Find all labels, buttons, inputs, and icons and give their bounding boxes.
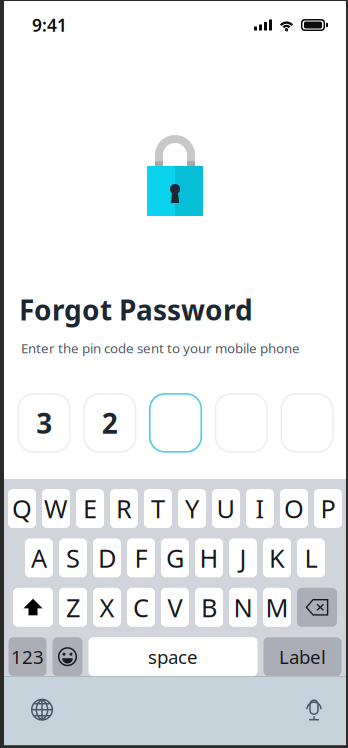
button[interactable]: L [297,538,325,577]
button[interactable]: B [195,588,223,627]
button[interactable]: Q [8,489,36,528]
button[interactable]: Dictate [292,688,336,732]
button[interactable]: P [314,489,342,528]
staticText: 9:41 [32,13,67,36]
staticText: O [284,492,304,525]
staticText: E [83,492,97,525]
staticText: V [167,590,182,624]
button[interactable]: space [88,637,257,676]
button[interactable]: G [161,538,189,577]
staticText: 123 [11,644,44,669]
button[interactable]: Emoji [52,637,82,676]
staticText: Enter the pin code sent to your mobile p… [21,339,300,357]
button[interactable]: U [212,489,240,528]
staticText: T [151,492,165,525]
staticText: R [116,492,132,525]
button[interactable]: O [280,489,308,528]
button[interactable]: K [263,538,291,577]
staticText: L [304,541,317,575]
staticText: C [133,590,149,624]
staticText: J [239,541,246,575]
button[interactable]: R [110,489,138,528]
button[interactable]: S [59,538,87,577]
staticText: U [216,492,235,525]
staticText: I [255,492,264,525]
staticText: space [148,644,198,669]
button[interactable]: C [127,588,155,627]
button[interactable]: Z [59,588,87,627]
staticText: 3 [36,404,52,441]
button[interactable]: I [246,489,274,528]
button[interactable]: 3 [18,394,70,452]
staticText: D [98,541,116,575]
staticText: H [199,541,218,575]
staticText: Y [185,492,199,525]
button[interactable]: 123 [8,637,46,676]
button[interactable]: A [25,538,53,577]
button[interactable]: Label [263,637,341,676]
button[interactable]: X [93,588,121,627]
staticText: F [134,541,147,575]
button[interactable] [281,394,333,452]
button[interactable]: V [161,588,189,627]
button[interactable]: D [93,538,121,577]
staticText: S [66,541,80,575]
staticText: W [44,492,68,525]
button[interactable]: J [229,538,257,577]
staticText: X [99,590,114,624]
button[interactable]: Delete [297,588,337,627]
button[interactable]: H [195,538,223,577]
button[interactable]: N [229,588,257,627]
staticText: B [201,590,217,624]
staticText: P [320,492,335,525]
button[interactable]: Change keyboard [20,688,64,732]
staticText: A [31,541,47,575]
button[interactable]: Y [178,489,206,528]
staticText: Q [12,492,32,525]
button[interactable] [150,394,201,452]
staticText: G [166,541,184,575]
staticText: Z [66,590,80,624]
button[interactable]: 2 [84,394,136,452]
button[interactable]: E [76,489,104,528]
button[interactable] [215,394,267,452]
staticText: N [233,590,252,624]
button[interactable]: F [127,538,155,577]
button[interactable]: T [144,489,172,528]
button[interactable]: W [42,489,70,528]
staticText: M [265,590,288,624]
staticText: K [269,541,285,575]
staticText: Forgot Password [19,291,253,328]
staticText: Label [279,644,326,669]
button[interactable]: M [263,588,291,627]
staticText: 2 [102,404,118,441]
button[interactable]: Shift [13,588,53,627]
